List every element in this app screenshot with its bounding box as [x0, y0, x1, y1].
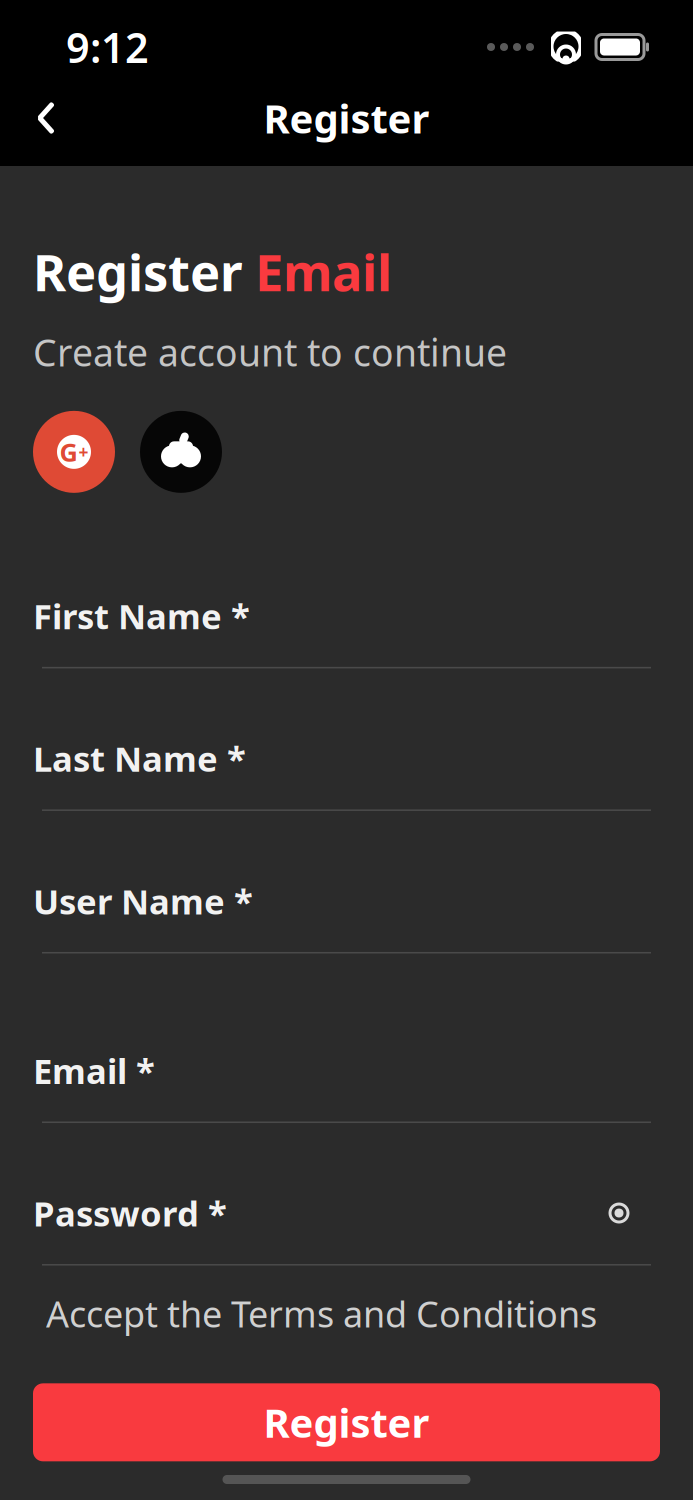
- staticText: Register: [33, 238, 243, 305]
- button[interactable]: Last Name *: [0, 668, 693, 811]
- button[interactable]: Register: [33, 1383, 660, 1461]
- button[interactable]: Back: [18, 90, 74, 146]
- staticText: 9:12: [66, 20, 149, 74]
- staticText: First Name *: [33, 593, 250, 639]
- staticText: +: [78, 440, 88, 463]
- staticText: Register: [263, 1396, 429, 1449]
- button[interactable]: Sign up with Google: [33, 411, 115, 493]
- staticText: Last Name *: [33, 735, 246, 781]
- staticText: User Name *: [33, 878, 253, 924]
- button[interactable]: Email *: [0, 953, 693, 1123]
- button[interactable]: User Name *: [0, 811, 693, 953]
- staticText: G: [59, 435, 77, 469]
- button[interactable]: Accept the Terms and Conditions: [0, 1265, 693, 1347]
- button[interactable]: First Name *: [0, 593, 693, 668]
- staticText: Register: [263, 91, 429, 144]
- staticText: Email: [255, 238, 392, 305]
- button[interactable]: Password *: [0, 1123, 693, 1265]
- staticText: Create account to continue: [33, 327, 507, 377]
- staticText: Password *: [33, 1190, 227, 1236]
- staticText: Accept the Terms and Conditions: [46, 1289, 597, 1337]
- button[interactable]: Sign up with Apple: [140, 411, 222, 493]
- staticText: Email *: [33, 1047, 155, 1093]
